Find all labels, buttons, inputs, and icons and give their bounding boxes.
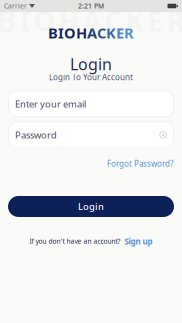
- staticText: Login To Your Account: [49, 72, 133, 82]
- staticText: R: [124, 23, 134, 42]
- staticText: BIOHACKER: [0, 2, 182, 40]
- staticText: Sign up: [124, 236, 152, 247]
- staticText: Carrier: [4, 2, 27, 10]
- staticText: Login: [78, 200, 104, 213]
- staticText: C: [97, 23, 106, 42]
- staticText: Password: [15, 129, 57, 141]
- staticText: Forgot Password?: [107, 158, 173, 169]
- button[interactable]: Login: [8, 196, 174, 217]
- staticText: Login: [70, 53, 112, 75]
- staticText: BIOH: [48, 23, 87, 42]
- staticText: E: [116, 23, 124, 42]
- button[interactable]: Enter your email: [8, 90, 174, 117]
- staticText: K: [106, 23, 116, 42]
- button[interactable]: Show password: [159, 131, 167, 139]
- staticText: 2:21 PM: [78, 2, 104, 10]
- staticText: Enter your email: [15, 98, 86, 110]
- staticText: A: [87, 23, 97, 42]
- button[interactable]: Forgot Password?: [107, 158, 173, 169]
- staticText: If you don't have an account?: [29, 237, 120, 246]
- button[interactable]: Password: [8, 121, 174, 148]
- button[interactable]: Sign up: [124, 236, 152, 247]
